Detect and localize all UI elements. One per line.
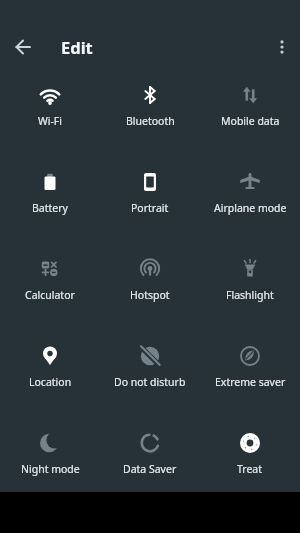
button[interactable]: Calculator: [0, 244, 100, 331]
staticText: Bluetooth: [126, 114, 175, 128]
button[interactable]: Flashlight: [200, 244, 300, 331]
staticText: Airplane mode: [214, 201, 287, 215]
staticText: Wi-Fi: [38, 114, 63, 128]
button[interactable]: Wi-Fi: [0, 70, 100, 157]
button[interactable]: [0, 29, 46, 64]
staticText: Battery: [32, 201, 68, 215]
button[interactable]: Bluetooth: [100, 70, 200, 157]
button[interactable]: [263, 29, 300, 64]
button[interactable]: Night mode: [0, 418, 100, 492]
button[interactable]: Do not disturb: [100, 331, 200, 418]
button[interactable]: Mobile data: [200, 70, 300, 157]
button[interactable]: Portrait: [100, 157, 200, 244]
staticText: Extreme saver: [215, 375, 286, 389]
staticText: Calculator: [25, 288, 75, 302]
button[interactable]: Location: [0, 331, 100, 418]
staticText: Treat: [237, 462, 263, 476]
button[interactable]: Airplane mode: [200, 157, 300, 244]
staticText: Night mode: [21, 462, 80, 476]
button[interactable]: Data Saver: [100, 418, 200, 492]
button[interactable]: Hotspot: [100, 244, 200, 331]
staticText: Do not disturb: [114, 375, 186, 389]
button[interactable]: Treat: [200, 418, 300, 492]
staticText: Hotspot: [130, 288, 170, 302]
staticText: Location: [29, 375, 72, 389]
button[interactable]: Battery: [0, 157, 100, 244]
staticText: Data Saver: [123, 462, 177, 476]
staticText: Edit: [61, 36, 93, 58]
staticText: Mobile data: [221, 114, 280, 128]
button[interactable]: Extreme saver: [200, 331, 300, 418]
staticText: Portrait: [131, 201, 169, 215]
staticText: Flashlight: [226, 288, 274, 302]
